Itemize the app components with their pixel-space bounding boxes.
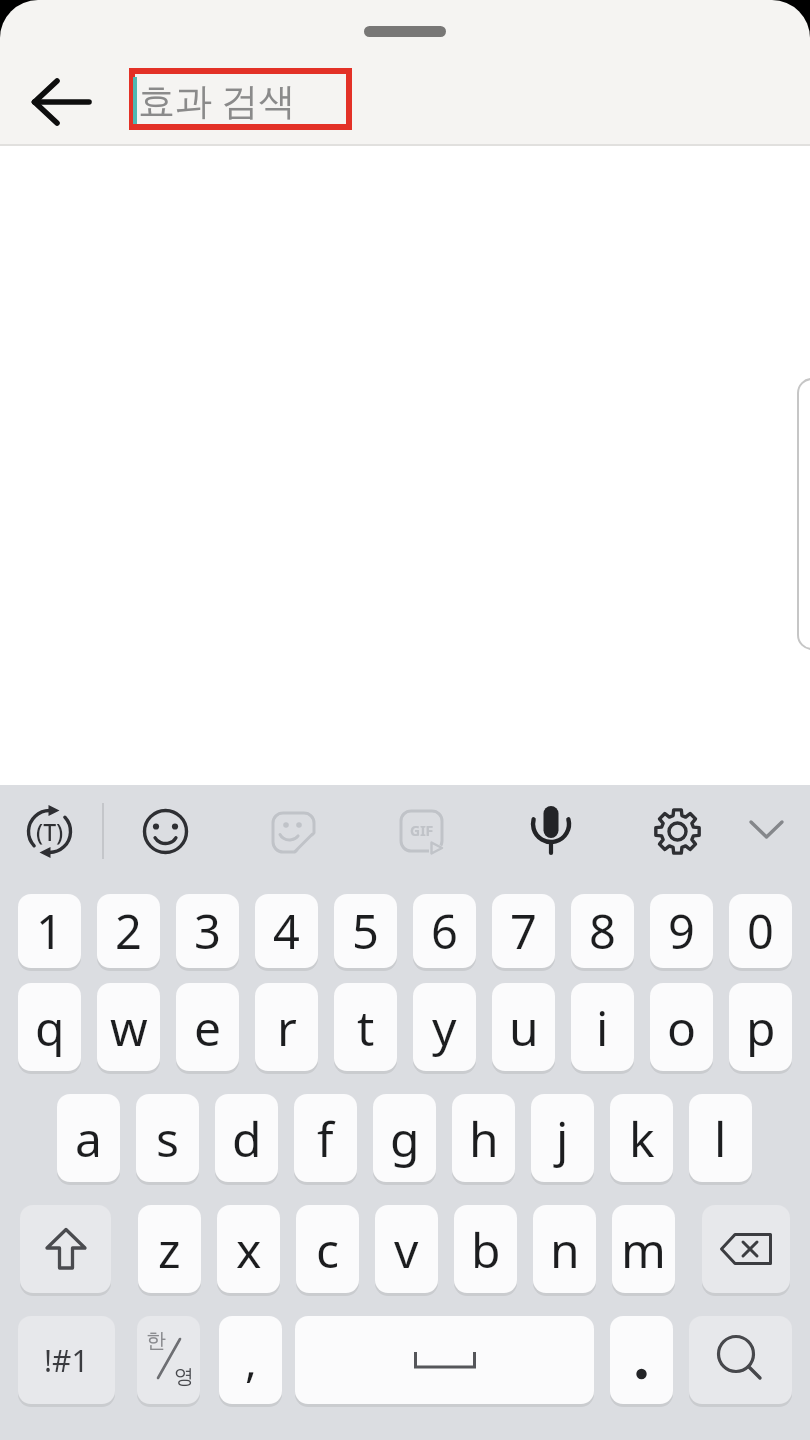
button[interactable]: 4 bbox=[255, 894, 318, 968]
staticText: !#1 bbox=[44, 1340, 89, 1381]
button[interactable]: 7 bbox=[492, 894, 555, 968]
staticText: b bbox=[471, 1217, 501, 1282]
button[interactable] bbox=[137, 803, 194, 860]
button[interactable] bbox=[129, 68, 352, 130]
staticText: 0 bbox=[747, 899, 774, 963]
staticText: 영 bbox=[174, 1364, 194, 1389]
staticText: 3 bbox=[194, 899, 221, 963]
staticText: p bbox=[746, 995, 776, 1060]
staticText: 9 bbox=[668, 899, 695, 963]
staticText: w bbox=[110, 995, 148, 1060]
button[interactable] bbox=[649, 803, 706, 860]
staticText: 5 bbox=[352, 899, 379, 963]
staticText: g bbox=[390, 1106, 420, 1171]
staticText: r bbox=[277, 995, 297, 1060]
button[interactable]: b bbox=[454, 1205, 517, 1293]
button[interactable]: l bbox=[689, 1094, 752, 1182]
button[interactable]: p bbox=[729, 983, 792, 1071]
staticText: o bbox=[667, 995, 697, 1060]
staticText: q bbox=[35, 995, 65, 1060]
button[interactable]: 9 bbox=[650, 894, 713, 968]
staticText: a bbox=[75, 1106, 102, 1171]
button[interactable]: 6 bbox=[413, 894, 476, 968]
button[interactable]: k bbox=[610, 1094, 673, 1182]
button[interactable]: n bbox=[533, 1205, 596, 1293]
staticText: x bbox=[236, 1217, 262, 1282]
button[interactable] bbox=[610, 1316, 673, 1404]
button[interactable]: a bbox=[57, 1094, 120, 1182]
button[interactable]: i bbox=[571, 983, 634, 1071]
button[interactable]: 8 bbox=[571, 894, 634, 968]
staticText: 6 bbox=[431, 899, 458, 963]
staticText: 4 bbox=[273, 899, 300, 963]
button[interactable]: o bbox=[650, 983, 713, 1071]
button[interactable]: v bbox=[375, 1205, 438, 1293]
staticText: 7 bbox=[510, 899, 537, 963]
button[interactable]: 1 bbox=[18, 894, 81, 968]
button[interactable]: 5 bbox=[334, 894, 397, 968]
button[interactable]: (T) bbox=[21, 803, 78, 860]
button[interactable]: m bbox=[612, 1205, 675, 1293]
staticText: s bbox=[156, 1106, 179, 1171]
staticText: c bbox=[316, 1217, 340, 1282]
staticText: t bbox=[357, 995, 375, 1060]
button[interactable]: e bbox=[176, 983, 239, 1071]
button[interactable]: q bbox=[18, 983, 81, 1071]
button[interactable]: , bbox=[219, 1316, 282, 1404]
staticText: 효과 검색 bbox=[138, 74, 296, 125]
staticText: l bbox=[714, 1106, 727, 1171]
button[interactable]: !#1 bbox=[18, 1316, 115, 1404]
staticText: (T) bbox=[36, 816, 64, 847]
staticText: m bbox=[621, 1217, 666, 1282]
button[interactable] bbox=[689, 1316, 792, 1404]
button[interactable]: s bbox=[136, 1094, 199, 1182]
button[interactable]: 0 bbox=[729, 894, 792, 968]
button[interactable]: x bbox=[217, 1205, 280, 1293]
button[interactable]: g bbox=[373, 1094, 436, 1182]
button[interactable] bbox=[702, 1205, 790, 1293]
button[interactable]: w bbox=[97, 983, 160, 1071]
button[interactable]: r bbox=[255, 983, 318, 1071]
button[interactable]: f bbox=[294, 1094, 357, 1182]
button[interactable] bbox=[737, 806, 794, 856]
staticText: d bbox=[232, 1106, 262, 1171]
button[interactable]: t bbox=[334, 983, 397, 1071]
button[interactable]: u bbox=[492, 983, 555, 1071]
staticText: n bbox=[550, 1217, 580, 1282]
button[interactable] bbox=[22, 74, 94, 130]
button[interactable] bbox=[522, 800, 579, 857]
staticText: i bbox=[596, 995, 609, 1060]
staticText: 1 bbox=[36, 899, 63, 963]
staticText: GIF bbox=[410, 821, 434, 840]
staticText: h bbox=[469, 1106, 499, 1171]
button[interactable]: c bbox=[296, 1205, 359, 1293]
staticText: u bbox=[509, 995, 539, 1060]
button[interactable]: 2 bbox=[97, 894, 160, 968]
button[interactable] bbox=[20, 1205, 111, 1293]
staticText: z bbox=[158, 1217, 181, 1282]
button[interactable] bbox=[295, 1316, 594, 1404]
staticText: 한 bbox=[146, 1328, 166, 1353]
staticText: e bbox=[194, 995, 222, 1060]
button[interactable]: z bbox=[138, 1205, 201, 1293]
button[interactable]: 한 bbox=[137, 1316, 200, 1404]
staticText: v bbox=[394, 1217, 419, 1282]
button[interactable]: d bbox=[215, 1094, 278, 1182]
staticText: f bbox=[317, 1106, 334, 1171]
staticText: y bbox=[432, 995, 457, 1060]
staticText: k bbox=[629, 1106, 655, 1171]
staticText: 8 bbox=[589, 899, 616, 963]
button[interactable]: j bbox=[531, 1094, 594, 1182]
button[interactable]: y bbox=[413, 983, 476, 1071]
button[interactable]: 3 bbox=[176, 894, 239, 968]
staticText: , bbox=[245, 1330, 257, 1390]
staticText: 2 bbox=[115, 899, 142, 963]
button[interactable]: h bbox=[452, 1094, 515, 1182]
button[interactable] bbox=[265, 803, 322, 860]
staticText: j bbox=[556, 1106, 569, 1171]
button[interactable]: GIF bbox=[393, 803, 450, 860]
